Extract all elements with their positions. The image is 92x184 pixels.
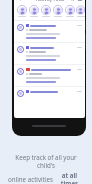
button[interactable]: Child profile 5 [64, 3, 76, 17]
button[interactable]: Search [69, 0, 75, 2]
button[interactable]: Child profile 2 [28, 3, 40, 17]
button[interactable] [14, 65, 85, 87]
staticText: at all times [54, 171, 85, 184]
staticText: Activity Feed [36, 0, 64, 2]
button[interactable]: Filter [77, 0, 83, 2]
button[interactable]: Back [16, 0, 23, 2]
button[interactable] [14, 21, 85, 43]
button[interactable]: Child profile 4 [52, 3, 64, 17]
button[interactable] [14, 87, 85, 97]
button[interactable]: Child profile 3 [40, 3, 52, 17]
button[interactable] [14, 43, 85, 65]
staticText: Keep track of all your child's [7, 153, 85, 169]
staticText: online activities [7, 175, 54, 183]
button[interactable]: Child profile 1 [16, 3, 28, 17]
button[interactable]: Child profile 6 [76, 3, 85, 17]
